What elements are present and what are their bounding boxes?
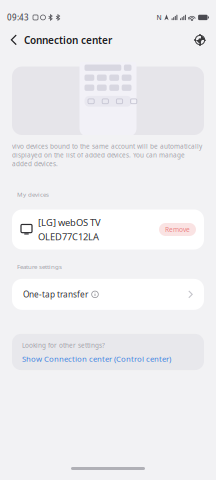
staticText: vivo devices bound to the same account w… xyxy=(12,142,202,168)
staticText: N xyxy=(156,13,161,22)
button[interactable]: Show Connection center (Control center) xyxy=(22,354,171,364)
staticText: Feature settings xyxy=(17,262,62,271)
staticText: Remove xyxy=(165,225,190,234)
staticText: [LG] webOS TV xyxy=(38,216,101,229)
button[interactable]: One-tap transfer xyxy=(12,279,204,310)
staticText: 09:43 xyxy=(7,12,29,23)
staticText: Connection center xyxy=(24,33,112,47)
staticText: My devices xyxy=(17,190,49,198)
button[interactable]: Remove xyxy=(159,223,196,236)
staticText: OLED77C12LA xyxy=(38,230,99,243)
staticText: Looking for other settings? xyxy=(22,341,105,350)
button[interactable]: Back xyxy=(4,27,24,53)
staticText: One-tap transfer xyxy=(23,289,88,300)
button[interactable]: Settings xyxy=(188,27,212,53)
button[interactable]: [LG] webOS TV xyxy=(12,209,204,249)
staticText: Show Connection center (Control center) xyxy=(22,354,171,364)
